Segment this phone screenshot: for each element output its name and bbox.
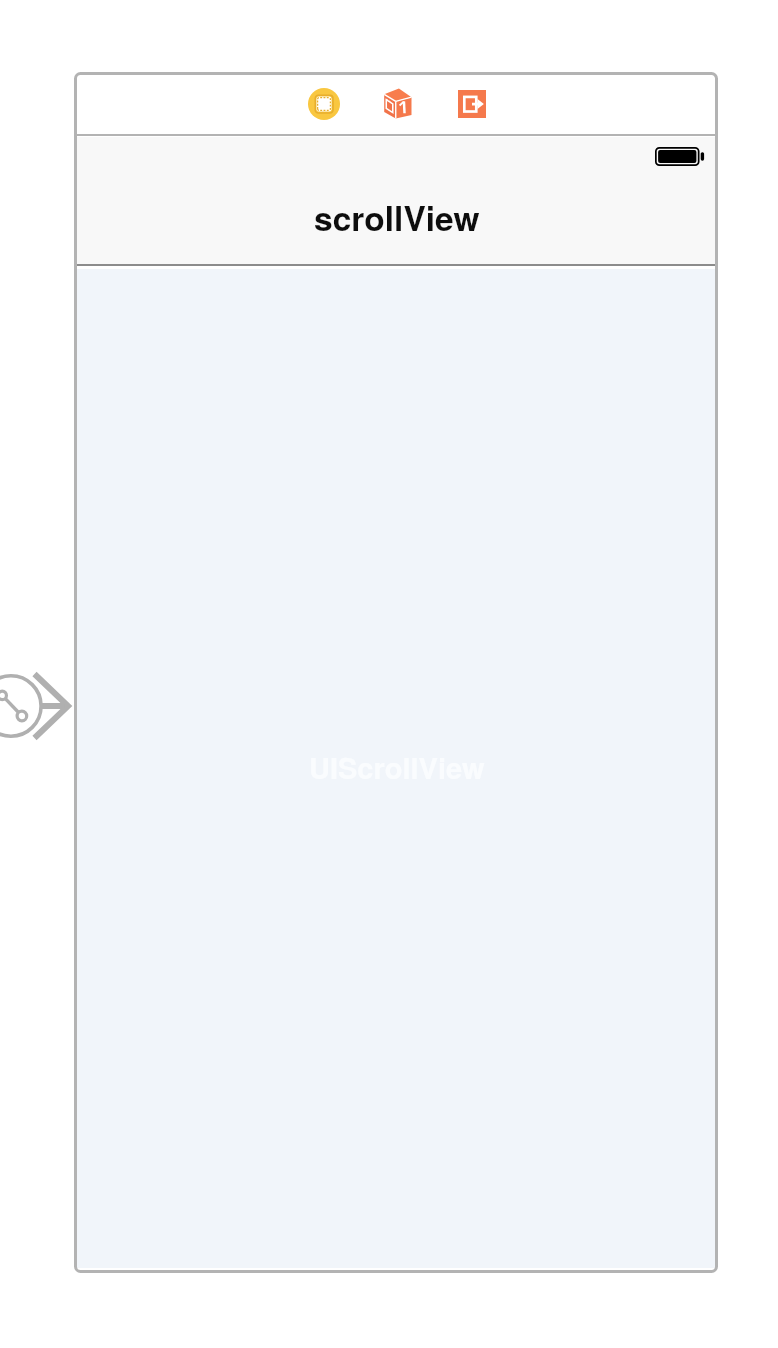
staticText: scrollView [314, 193, 480, 241]
staticText: UIScrollView [309, 746, 485, 788]
button[interactable]: View Controller [308, 88, 340, 120]
button[interactable]: Exit [458, 90, 486, 118]
button[interactable]: Storyboard entry point [0, 651, 94, 761]
button[interactable]: First Responder [383, 87, 414, 120]
other: Battery full [655, 147, 704, 166]
